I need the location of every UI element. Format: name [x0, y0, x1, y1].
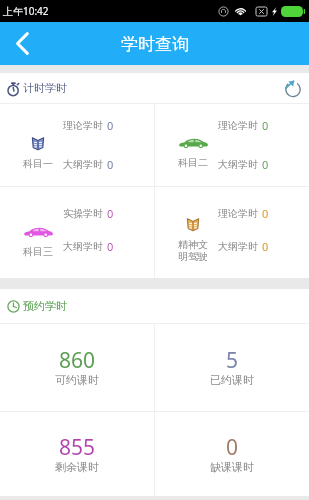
staticText: 理论学时: [218, 207, 258, 220]
staticText: 0: [262, 157, 269, 172]
staticText: 大纲学时: [63, 240, 103, 253]
button[interactable]: 5: [155, 324, 309, 411]
button[interactable]: 科目三: [0, 187, 154, 278]
staticText: 0: [262, 206, 269, 221]
button[interactable]: 精神文 明驾驶: [155, 187, 309, 278]
staticText: 实操学时: [63, 207, 103, 220]
staticText: 缺课课时: [210, 460, 254, 474]
button[interactable]: 科目一: [0, 104, 154, 186]
staticText: 已约课时: [210, 373, 254, 387]
staticText: 0: [107, 206, 114, 221]
button[interactable]: 855: [0, 412, 154, 496]
staticText: 精神文 明驾驶: [178, 238, 208, 263]
button[interactable]: 返回: [0, 22, 44, 65]
button[interactable]: 科目二: [155, 104, 309, 186]
staticText: 大纲学时: [218, 158, 258, 171]
staticText: 860: [59, 346, 96, 375]
staticText: 科目二: [178, 156, 208, 169]
staticText: 大纲学时: [218, 240, 258, 253]
staticText: 上午10:42: [3, 4, 49, 18]
staticText: 理论学时: [63, 119, 103, 132]
staticText: 0: [226, 433, 239, 462]
staticText: 0: [262, 239, 269, 254]
button[interactable]: 0: [155, 412, 309, 496]
staticText: 可约课时: [55, 373, 99, 387]
button[interactable]: 860: [0, 324, 154, 411]
staticText: 大纲学时: [63, 158, 103, 171]
staticText: 计时学时: [23, 81, 67, 95]
staticText: 科目三: [23, 245, 53, 258]
button[interactable]: 刷新: [277, 73, 309, 103]
staticText: 0: [107, 118, 114, 133]
staticText: 预约学时: [23, 299, 67, 313]
staticText: 理论学时: [218, 119, 258, 132]
staticText: 855: [59, 433, 96, 462]
staticText: 科目一: [23, 157, 53, 170]
staticText: 0: [262, 118, 269, 133]
staticText: 剩余课时: [55, 460, 99, 474]
staticText: 0: [107, 239, 114, 254]
staticText: 0: [107, 157, 114, 172]
staticText: 学时查询: [121, 34, 189, 55]
staticText: 5: [226, 346, 239, 375]
